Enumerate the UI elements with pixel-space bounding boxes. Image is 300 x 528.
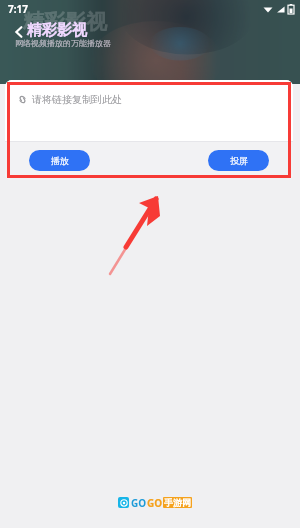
staticText: 精彩影视 (23, 9, 107, 35)
staticText: 请将链接复制到此处 (32, 93, 122, 106)
staticText: 网络视频播放的万能播放器 (15, 38, 111, 48)
staticText: GO (147, 496, 163, 509)
button[interactable]: 投屏 (208, 150, 269, 171)
other: Link (18, 95, 27, 104)
staticText: 手游网 (164, 497, 191, 508)
staticText: 精彩影视 (27, 21, 87, 40)
staticText: 7:17 (8, 2, 28, 16)
button[interactable]: 播放 (29, 150, 90, 171)
button[interactable]: Link (5, 80, 293, 141)
staticText: 播放 (51, 155, 69, 166)
button[interactable]: Back (9, 22, 29, 42)
staticText: GO (131, 496, 147, 509)
staticText: 投屏 (230, 155, 248, 166)
